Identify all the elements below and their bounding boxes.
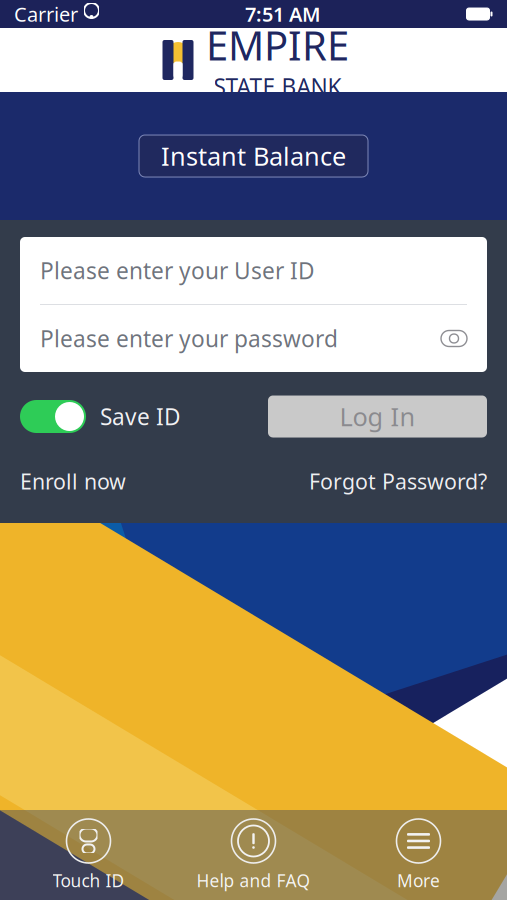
button[interactable]: Log In: [268, 395, 487, 437]
button[interactable]: Save ID: [20, 394, 181, 439]
button[interactable]: Please enter your User ID: [20, 237, 487, 304]
staticText: Forgot Password?: [309, 467, 487, 495]
button[interactable]: Enroll now: [20, 461, 126, 501]
staticText: Help and FAQ: [196, 869, 310, 892]
staticText: Log In: [339, 400, 415, 433]
button[interactable]: More: [336, 812, 501, 898]
button[interactable]: Touch ID: [6, 812, 171, 898]
staticText: 7:51 AM: [245, 1, 321, 27]
button[interactable]: Help and FAQ: [171, 812, 336, 898]
button[interactable]: Please enter your password: [20, 305, 487, 372]
staticText: Enroll now: [20, 467, 126, 495]
staticText: EMPIRE: [206, 18, 349, 71]
staticText: STATE BANK: [213, 71, 341, 102]
button[interactable]: Instant Balance: [139, 135, 368, 177]
staticText: Instant Balance: [161, 139, 346, 173]
staticText: More: [397, 869, 440, 892]
staticText: Save ID: [100, 401, 181, 431]
staticText: Please enter your User ID: [40, 255, 315, 285]
staticText: Please enter your password: [40, 323, 338, 353]
button[interactable]: Forgot Password?: [309, 461, 487, 501]
staticText: Carrier: [14, 1, 78, 27]
staticText: Touch ID: [52, 869, 124, 892]
